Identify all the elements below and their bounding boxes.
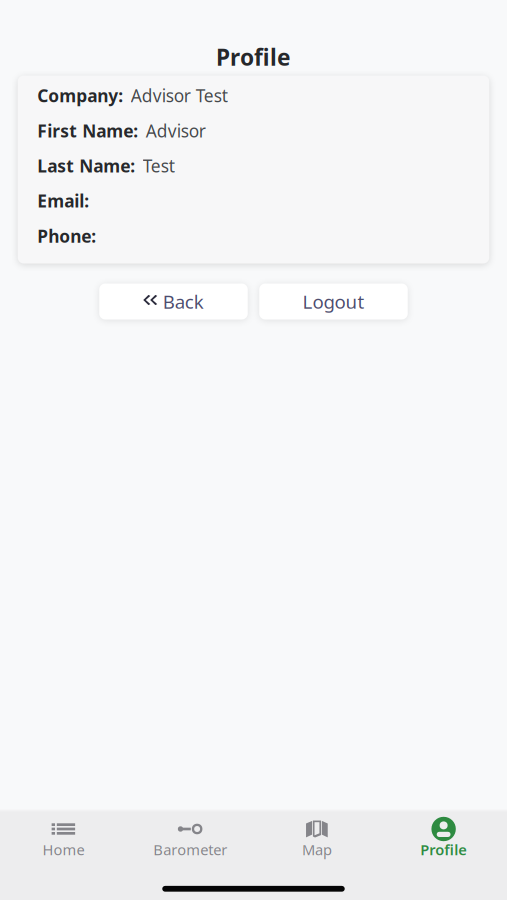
staticText: Advisor <box>146 119 206 142</box>
staticText: Test <box>143 154 175 177</box>
button[interactable]: Profile <box>380 813 507 864</box>
staticText: Back <box>163 289 204 314</box>
button[interactable]: Barometer <box>127 813 254 864</box>
button[interactable]: Map <box>253 813 380 864</box>
button[interactable]: Home <box>0 813 127 864</box>
button[interactable]: Logout <box>259 283 408 319</box>
staticText: Profile <box>420 840 467 859</box>
staticText: Email: <box>37 189 89 212</box>
staticText: Company: <box>37 84 123 107</box>
staticText: Barometer <box>153 840 227 859</box>
staticText: Map <box>302 840 332 859</box>
staticText: Phone: <box>37 224 96 247</box>
staticText: First Name: <box>37 119 138 142</box>
staticText: Advisor Test <box>131 84 228 107</box>
staticText: Profile <box>216 42 291 72</box>
staticText: Logout <box>302 289 364 314</box>
button[interactable]: Back <box>99 283 248 319</box>
staticText: Home <box>42 840 84 859</box>
staticText: Last Name: <box>37 154 135 177</box>
